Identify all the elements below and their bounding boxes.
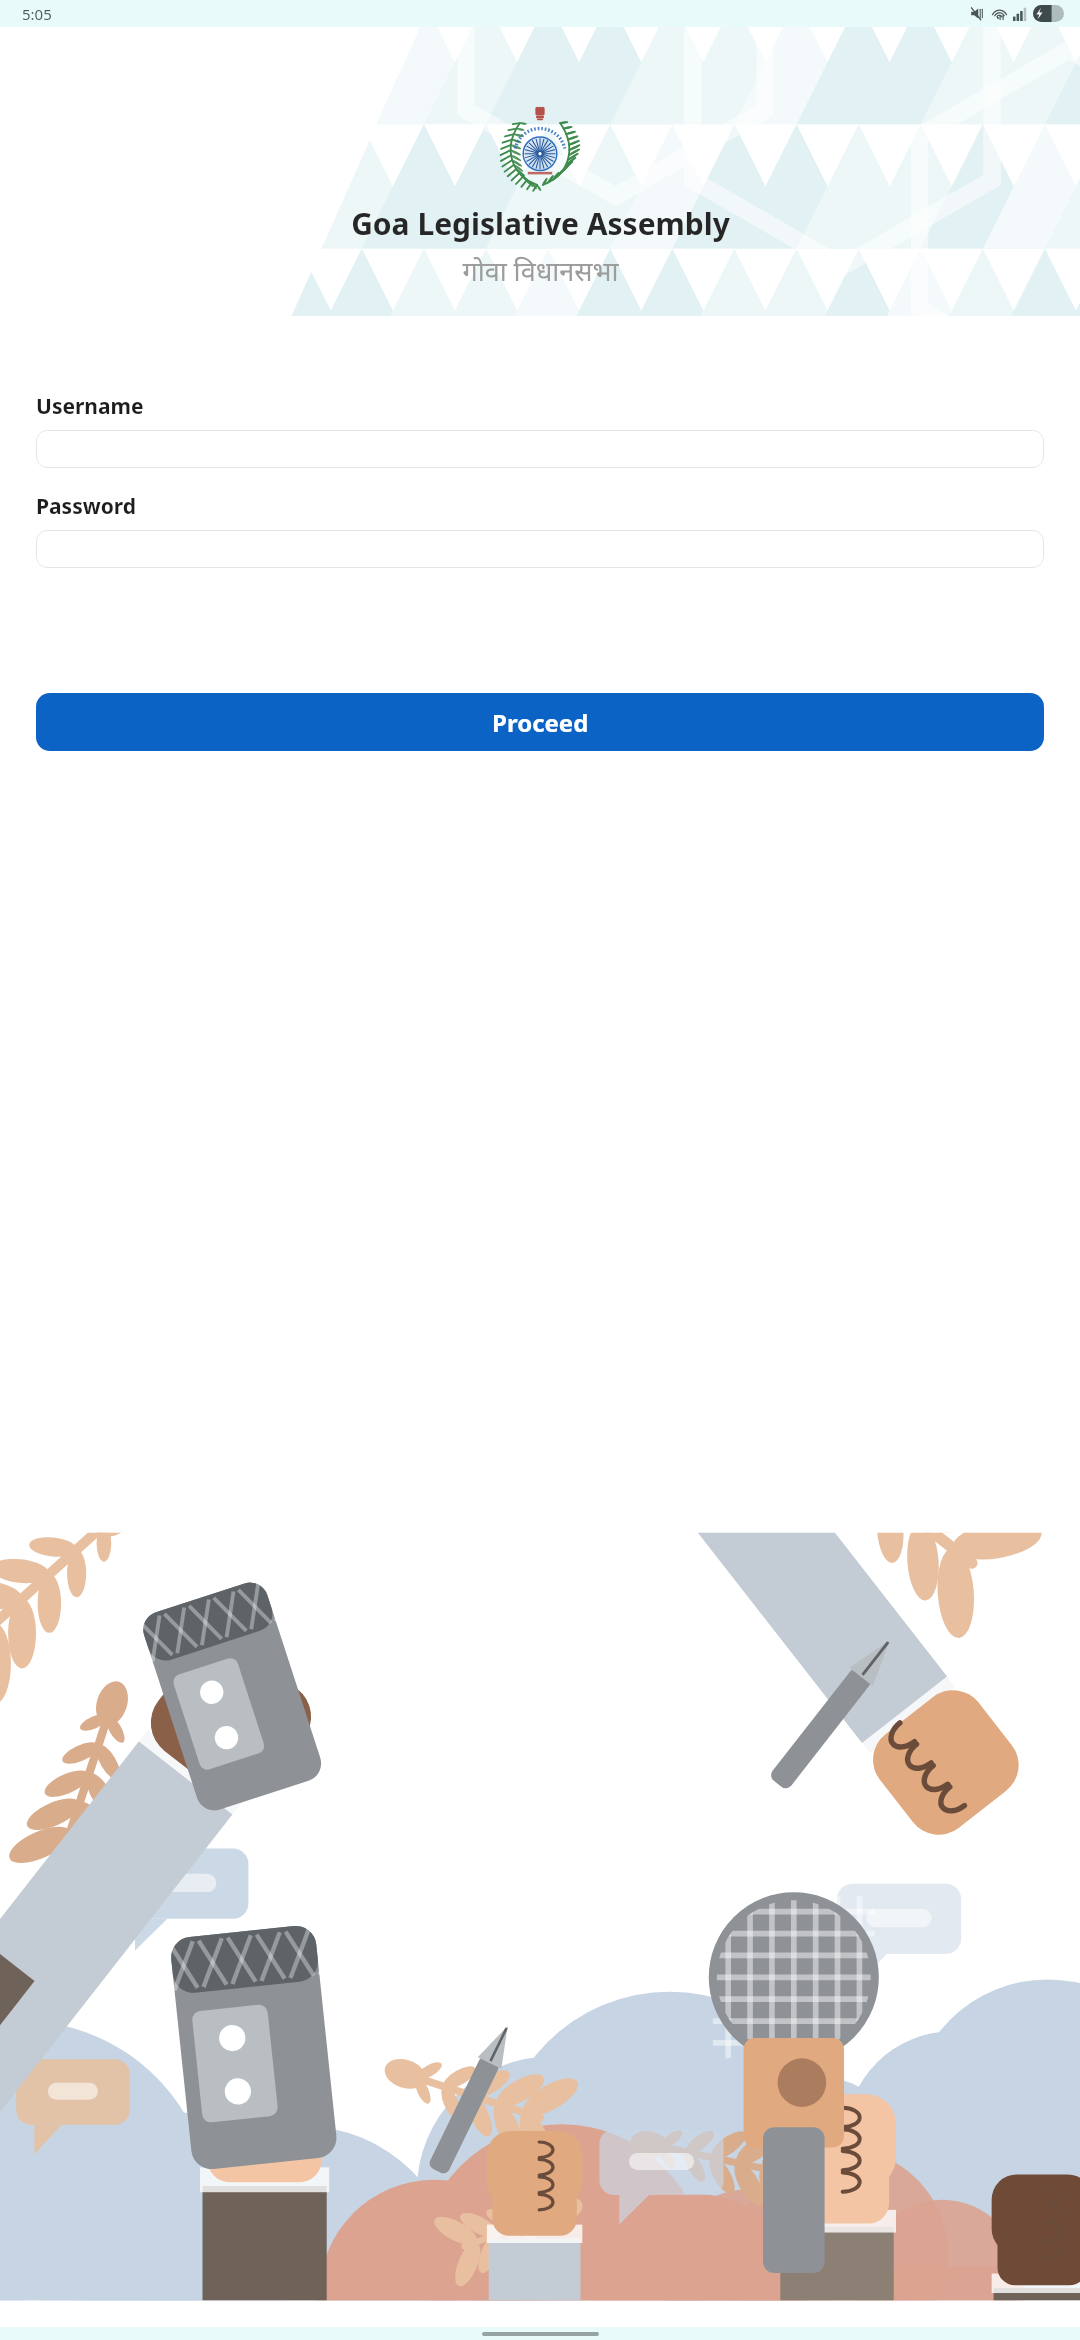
button[interactable] [36,430,1044,468]
button[interactable] [36,530,1044,568]
staticText: Username [36,392,144,421]
button[interactable]: Proceed [36,693,1044,751]
staticText: गोवा विधानसभा [462,252,619,289]
staticText: Password [36,492,137,521]
staticText: Proceed [492,706,589,739]
staticText: 5:05 [22,4,52,24]
staticText: Goa Legislative Assembly [351,203,730,244]
